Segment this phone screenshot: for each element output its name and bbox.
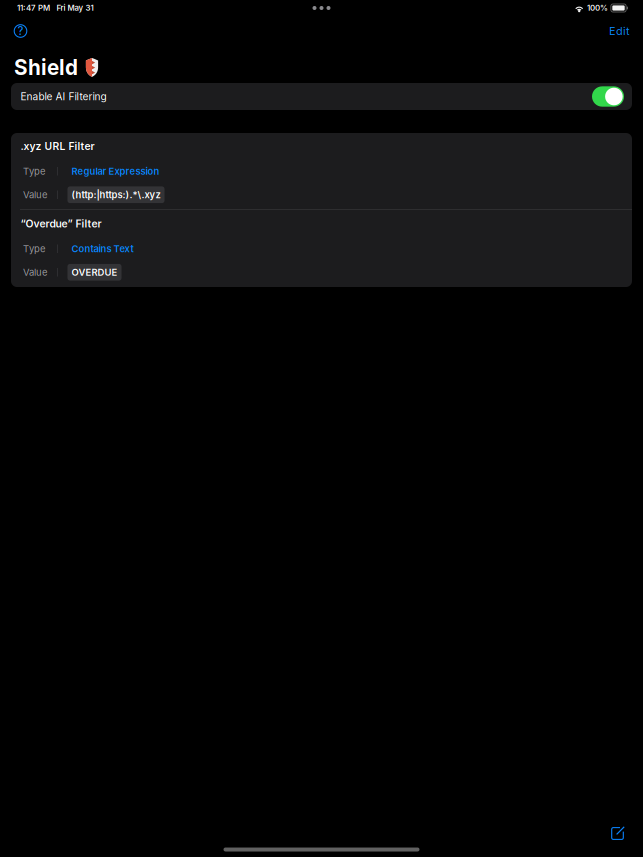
staticText: Type	[23, 243, 46, 254]
staticText: Contains Text	[71, 243, 133, 254]
staticText: ?	[17, 24, 23, 38]
staticText: “Overdue” Filter	[20, 217, 101, 230]
staticText: Enable AI Filtering	[20, 90, 106, 103]
staticText: .xyz URL Filter	[20, 140, 94, 153]
button[interactable]: Enable AI Filtering	[11, 83, 632, 110]
staticText: Value	[23, 266, 48, 278]
staticText: Type	[23, 165, 46, 177]
staticText: OVERDUE	[71, 266, 117, 278]
staticText: Edit	[609, 24, 630, 38]
staticText: Shield	[14, 55, 78, 80]
staticText: 11:47 PM	[17, 3, 50, 13]
staticText: 100%	[587, 3, 608, 13]
staticText: Fri May 31	[56, 3, 93, 13]
button[interactable]: Edit	[606, 20, 633, 42]
staticText: Value	[23, 189, 48, 200]
button[interactable]: Compose	[604, 811, 631, 842]
staticText: Regular Expression	[71, 165, 159, 177]
button[interactable]: Help	[11, 22, 29, 40]
staticText: (http:|https:).*\.xyz	[71, 189, 160, 200]
